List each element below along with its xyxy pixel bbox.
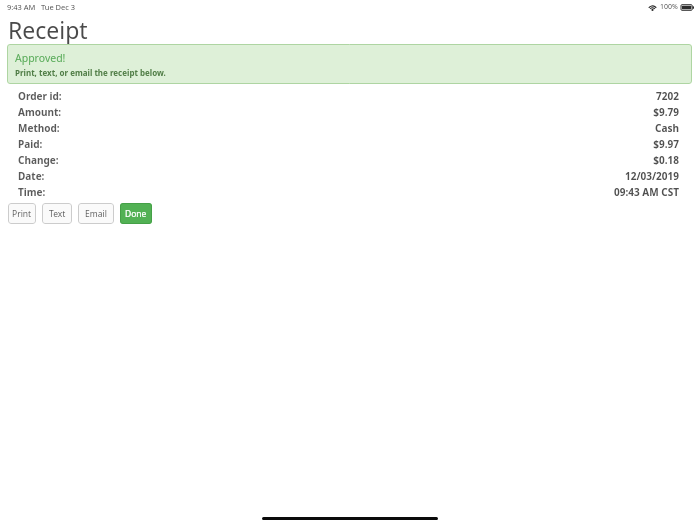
staticText: Change: — [18, 153, 59, 167]
button[interactable]: Change: — [0, 152, 700, 168]
staticText: Cash — [64, 121, 679, 135]
staticText: Done — [125, 208, 147, 220]
staticText: 100% — [660, 2, 678, 12]
staticText: Print — [12, 208, 32, 220]
staticText: $0.18 — [63, 153, 679, 167]
staticText: Text — [49, 208, 66, 220]
other: Battery full — [681, 4, 694, 11]
staticText: Date: — [18, 169, 45, 183]
button[interactable]: Time: — [0, 184, 700, 200]
staticText: 12/03/2019 — [49, 169, 679, 183]
staticText: Paid: — [18, 137, 43, 151]
button[interactable]: Amount: — [0, 104, 700, 120]
staticText: Tue Dec 3 — [41, 2, 76, 12]
button[interactable]: Date: — [0, 168, 700, 184]
staticText: Approved! — [15, 51, 66, 65]
staticText: Amount: — [18, 105, 62, 119]
button[interactable]: Print — [8, 203, 36, 224]
staticText: Time: — [18, 185, 46, 199]
staticText: Receipt — [8, 14, 88, 44]
button[interactable]: Paid: — [0, 136, 700, 152]
other: Wi-Fi — [648, 4, 657, 11]
staticText: 09:43 AM CST — [50, 185, 679, 199]
button[interactable]: Text — [42, 203, 72, 224]
button[interactable]: Email — [78, 203, 114, 224]
staticText: 9:43 AM — [7, 2, 36, 12]
staticText: Order id: — [18, 89, 62, 103]
staticText: $9.79 — [66, 105, 679, 119]
button[interactable]: Order id: — [0, 88, 700, 104]
staticText: $9.97 — [47, 137, 679, 151]
staticText: 7202 — [66, 89, 679, 103]
staticText: Print, text, or email the receipt below. — [15, 67, 166, 78]
staticText: Method: — [18, 121, 60, 135]
staticText: Email — [85, 208, 107, 220]
button[interactable]: Done — [120, 203, 152, 224]
button[interactable]: Method: — [0, 120, 700, 136]
